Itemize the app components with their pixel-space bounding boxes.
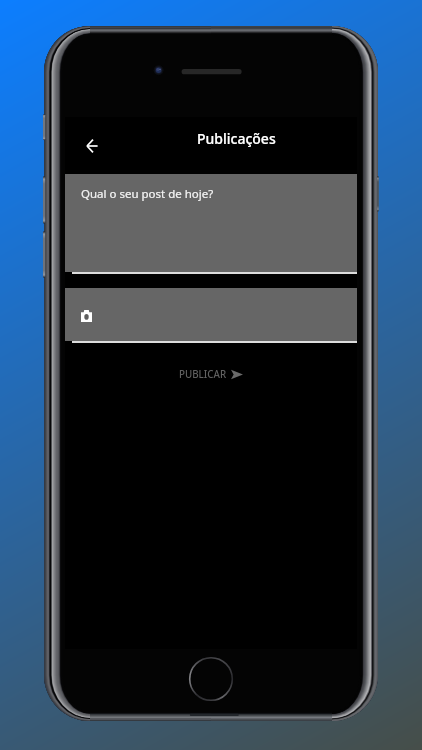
staticText: Publicações — [197, 129, 276, 148]
button[interactable]: Qual o seu post de hoje? — [65, 174, 357, 272]
staticText: Qual o seu post de hoje? — [81, 186, 214, 202]
button[interactable]: Adicionar foto — [65, 288, 357, 341]
staticText: PUBLICAR — [179, 368, 227, 381]
button[interactable]: PUBLICAR — [179, 368, 243, 381]
button[interactable]: Voltar — [74, 128, 110, 164]
